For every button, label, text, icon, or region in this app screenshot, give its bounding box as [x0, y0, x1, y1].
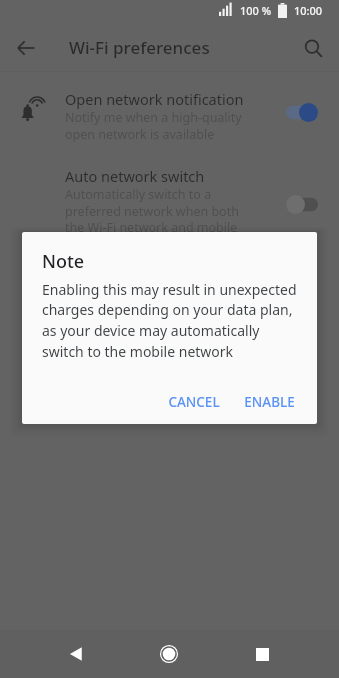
button[interactable]: Navigate up: [10, 32, 42, 64]
button[interactable]: Open network notification: [0, 78, 339, 148]
button[interactable]: Recent apps: [244, 636, 280, 672]
button[interactable]: ENABLE: [236, 385, 303, 419]
staticText: Wi-Fi preferences: [69, 36, 210, 59]
staticText: 100 %: [240, 3, 272, 18]
staticText: Notify me when a high-quality open netwo…: [65, 109, 242, 142]
staticText: Note: [42, 249, 85, 274]
staticText: Automatically switch to a preferred netw…: [65, 186, 239, 235]
button[interactable]: CANCEL: [160, 385, 228, 419]
staticText: CANCEL: [168, 393, 220, 411]
staticText: ENABLE: [244, 393, 295, 411]
staticText: Enabling this may result in unexpected c…: [42, 280, 298, 362]
staticText: 10:00: [294, 3, 323, 18]
button[interactable]: Home: [151, 636, 187, 672]
staticText: Auto network switch: [65, 166, 205, 186]
staticText: Open network notification: [65, 89, 244, 109]
button[interactable]: Auto network switch: [0, 160, 339, 235]
button[interactable]: Back: [58, 636, 94, 672]
button[interactable]: Search: [297, 32, 329, 64]
